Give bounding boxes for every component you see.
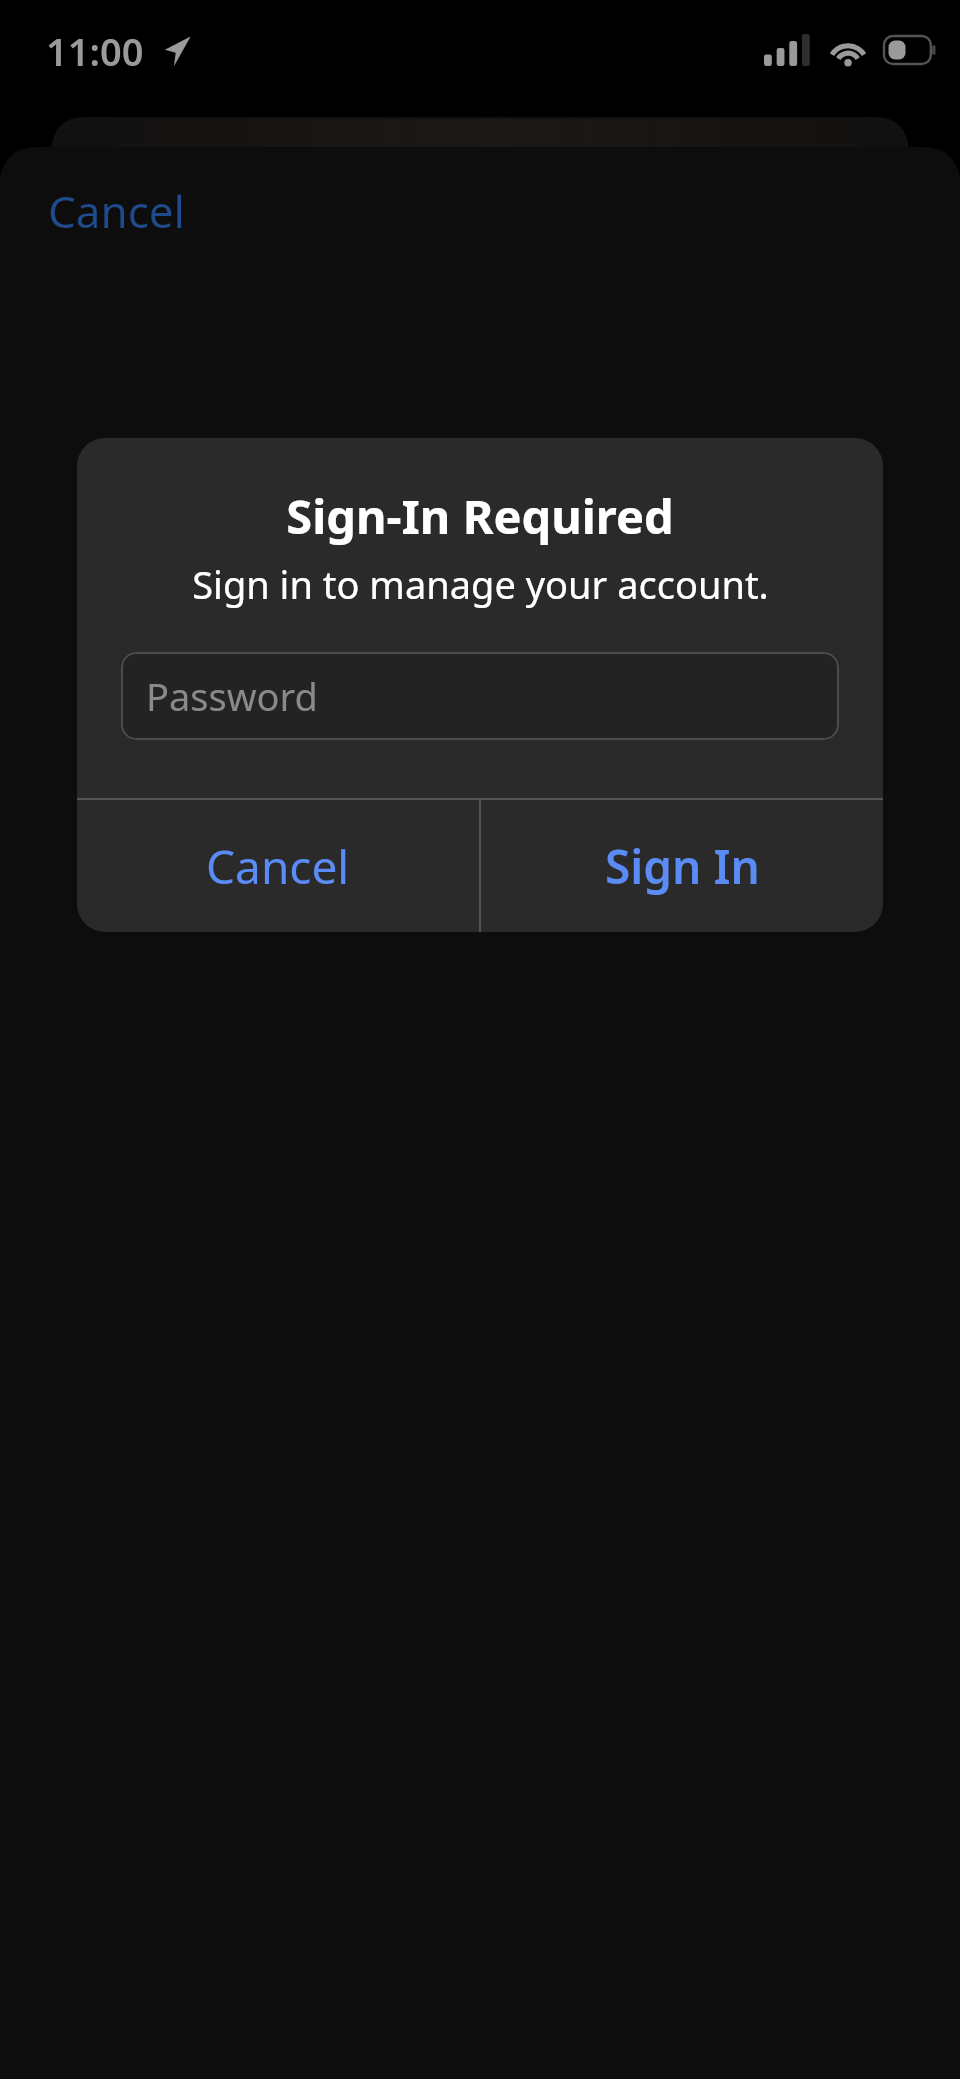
staticText: Sign In	[605, 835, 760, 898]
staticText: Cancel	[48, 181, 185, 241]
staticText: 11:00	[46, 25, 144, 77]
button[interactable]: Cancel	[77, 800, 479, 932]
staticText: Sign in to manage your account.	[192, 558, 769, 610]
staticText: Cancel	[206, 835, 350, 898]
button[interactable]: Sign In	[481, 800, 883, 932]
button[interactable]: Password	[121, 652, 839, 740]
staticText: Sign-In Required	[286, 484, 674, 548]
button[interactable]: Cancel	[24, 167, 209, 255]
staticText: Password	[146, 670, 318, 722]
